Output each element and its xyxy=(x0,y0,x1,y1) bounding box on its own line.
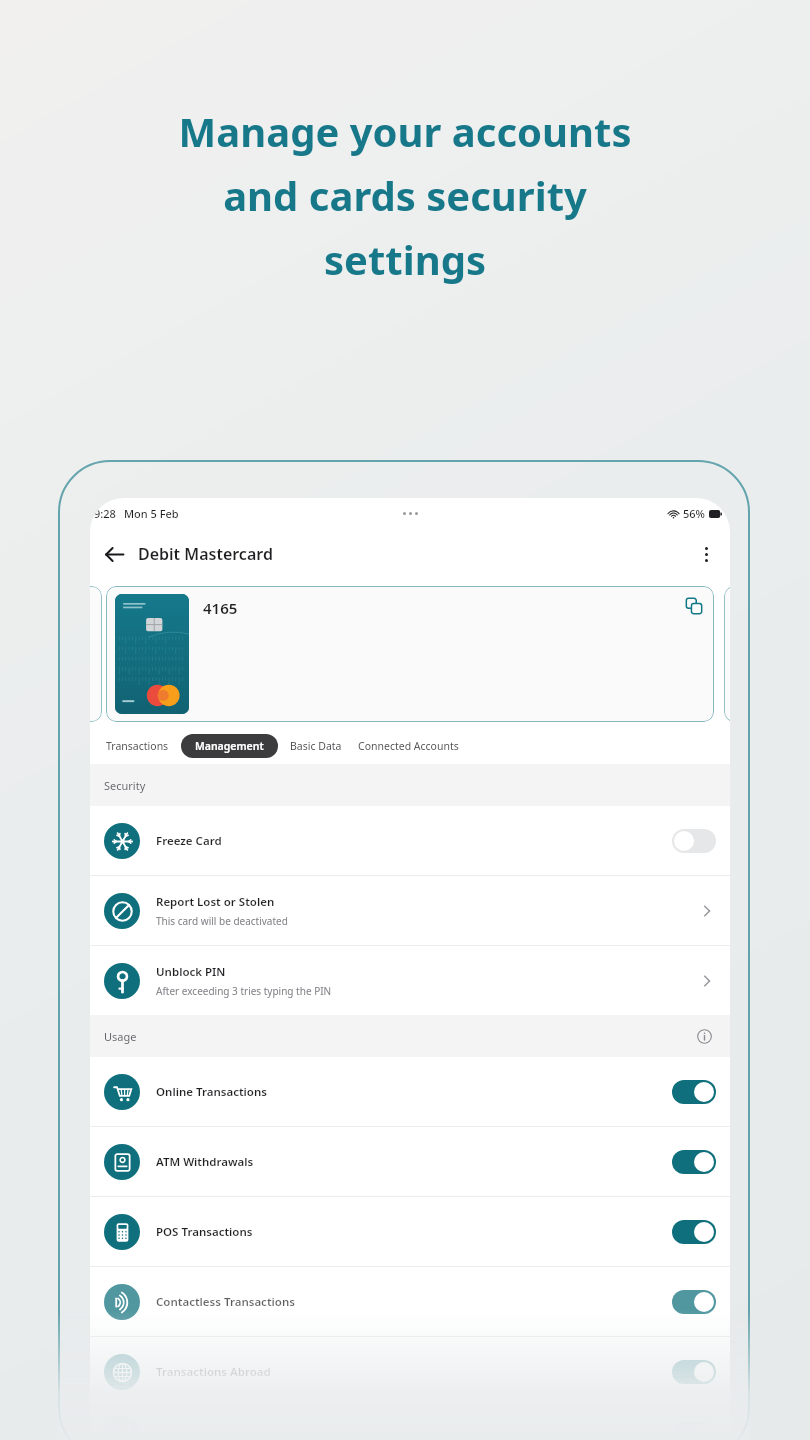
staticText: Basic Data xyxy=(290,739,342,753)
button[interactable]: Transactions xyxy=(102,734,173,758)
button[interactable]: Disabled xyxy=(672,829,716,853)
staticText: Debit Mastercard xyxy=(138,543,273,565)
button[interactable]: ATM Withdrawals xyxy=(90,1127,730,1196)
staticText: After exceeding 3 tries typing the PIN xyxy=(156,984,332,998)
staticText: Usage xyxy=(104,1029,137,1044)
staticText: Manage your accounts and cards security … xyxy=(56,104,754,287)
staticText: Online Transactions xyxy=(156,1084,267,1100)
button[interactable]: Enabled xyxy=(672,1290,716,1314)
staticText: Freeze Card xyxy=(156,833,222,849)
button[interactable]: Freeze Card xyxy=(90,806,730,875)
staticText: Mon 5 Feb xyxy=(124,506,179,521)
staticText: This card will be deactivated xyxy=(156,914,288,928)
staticText: 9:28 xyxy=(94,506,116,521)
staticText: Contactless Transactions xyxy=(156,1294,295,1310)
button[interactable]: Enabled xyxy=(672,1360,716,1384)
staticText: Report Lost or Stolen xyxy=(156,894,275,910)
button[interactable]: Transactions Abroad xyxy=(90,1337,730,1406)
button[interactable]: Usage information xyxy=(692,1024,716,1048)
button[interactable]: 4165 xyxy=(106,586,714,722)
staticText: Unblock PIN xyxy=(156,964,226,980)
button[interactable]: Online Transactions xyxy=(90,1057,730,1126)
button[interactable]: Report Lost or Stolen xyxy=(90,876,730,945)
staticText: ATM Withdrawals xyxy=(156,1154,254,1170)
button[interactable]: Connected Accounts xyxy=(354,734,463,758)
staticText: Management xyxy=(195,739,264,753)
button[interactable]: Management xyxy=(181,734,278,758)
button[interactable]: Contactless Transactions xyxy=(90,1267,730,1336)
button[interactable]: Basic Data xyxy=(286,734,346,758)
staticText: Security xyxy=(104,778,146,793)
button[interactable]: Unblock PIN xyxy=(90,946,730,1015)
staticText: Transactions Abroad xyxy=(156,1364,271,1380)
button[interactable]: Back xyxy=(96,536,132,572)
button[interactable]: Copy card number xyxy=(680,592,708,620)
staticText: 4165 xyxy=(203,598,238,618)
button[interactable]: POS Transactions xyxy=(90,1197,730,1266)
button[interactable]: Enabled xyxy=(672,1220,716,1244)
staticText: Connected Accounts xyxy=(358,739,459,753)
staticText: 56% xyxy=(683,506,705,521)
button[interactable]: Enabled xyxy=(672,1080,716,1104)
button[interactable]: More options xyxy=(688,536,724,572)
staticText: Transactions xyxy=(106,739,169,753)
button[interactable]: Enabled xyxy=(672,1150,716,1174)
staticText: POS Transactions xyxy=(156,1224,253,1240)
